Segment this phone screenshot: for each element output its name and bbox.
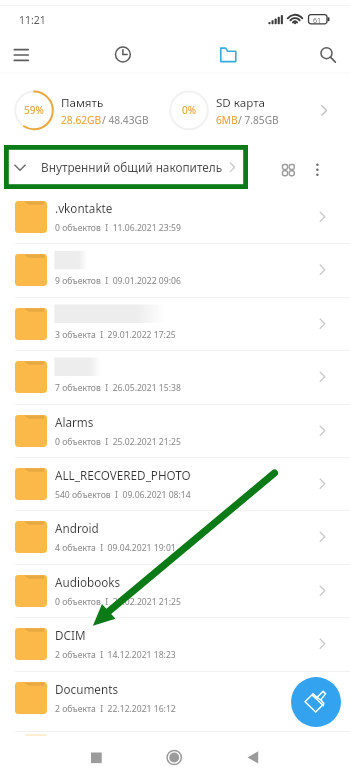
button[interactable]: Back xyxy=(230,736,277,778)
staticText: 11:21 xyxy=(19,13,46,27)
staticText: 2 объекта I 14.12.2021 18:23 xyxy=(55,649,176,661)
staticText: 6MB xyxy=(216,113,238,127)
button[interactable]: Clean up storage xyxy=(291,677,341,727)
button[interactable]: Recent files xyxy=(109,41,137,69)
staticText: .vkontakte xyxy=(55,200,113,216)
staticText: 2 объекта I 22.12.2021 16:12 xyxy=(55,703,176,715)
button[interactable]: 9 объектов I 09.01.2022 09:06 xyxy=(0,243,350,296)
staticText: 0% xyxy=(182,103,197,117)
staticText: 7 объектов I 26.05.2021 15:38 xyxy=(55,382,181,394)
button[interactable]: Внутренний общий накопитель xyxy=(10,145,228,189)
button[interactable]: 0% xyxy=(165,79,350,138)
button[interactable]: .vkontakte xyxy=(0,190,350,243)
staticText: Alarms xyxy=(55,414,94,430)
button[interactable]: Android xyxy=(0,510,350,563)
button[interactable]: Search xyxy=(313,41,341,69)
staticText: Внутренний общий накопитель xyxy=(41,159,223,175)
staticText: 0 объектов I 25.02.2021 21:25 xyxy=(55,436,181,448)
staticText: 61 xyxy=(313,16,322,26)
staticText: 0 объектов I 11.06.2021 23:59 xyxy=(55,222,181,234)
staticText: Audiobooks xyxy=(55,574,121,590)
button[interactable]: Home xyxy=(151,736,198,778)
button[interactable]: Recents xyxy=(73,736,120,778)
staticText: DCIM xyxy=(55,627,86,643)
button[interactable]: More options xyxy=(306,155,331,180)
staticText: 3 объекта I 29.01.2022 17:25 xyxy=(55,329,176,341)
button[interactable]: Grid view xyxy=(276,155,301,180)
staticText: / 7.85GB xyxy=(238,113,279,127)
staticText: / 48.43GB xyxy=(102,113,149,127)
staticText: Android xyxy=(55,520,99,536)
staticText: SD карта xyxy=(216,95,265,111)
staticText: 4 объекта I 09.04.2021 19:01 xyxy=(55,542,176,554)
button[interactable]: Menu xyxy=(7,41,36,67)
button[interactable]: 7 объектов I 26.05.2021 15:38 xyxy=(0,350,350,403)
button[interactable]: Files xyxy=(214,41,242,69)
staticText: ALL_RECOVERED_PHOTO xyxy=(55,467,191,483)
button[interactable]: ALL_RECOVERED_PHOTO xyxy=(0,457,350,510)
staticText: 9 объектов I 09.01.2022 09:06 xyxy=(55,275,181,287)
staticText: Память xyxy=(61,95,104,111)
button[interactable]: 3 объекта I 29.01.2022 17:25 xyxy=(0,297,350,350)
staticText: 28.62GB xyxy=(61,113,102,127)
button[interactable]: 59% xyxy=(10,79,170,138)
button[interactable]: DCIM xyxy=(0,617,350,670)
staticText: 59% xyxy=(24,103,44,117)
button[interactable]: Alarms xyxy=(0,404,350,457)
button[interactable]: Audiobooks xyxy=(0,564,350,617)
button[interactable]: Documents xyxy=(0,671,350,724)
staticText: 0 объектов I 20.02.2021 21:25 xyxy=(55,596,181,608)
staticText: Documents xyxy=(55,681,118,697)
staticText: 540 объектов I 09.06.2021 08:14 xyxy=(55,489,191,501)
